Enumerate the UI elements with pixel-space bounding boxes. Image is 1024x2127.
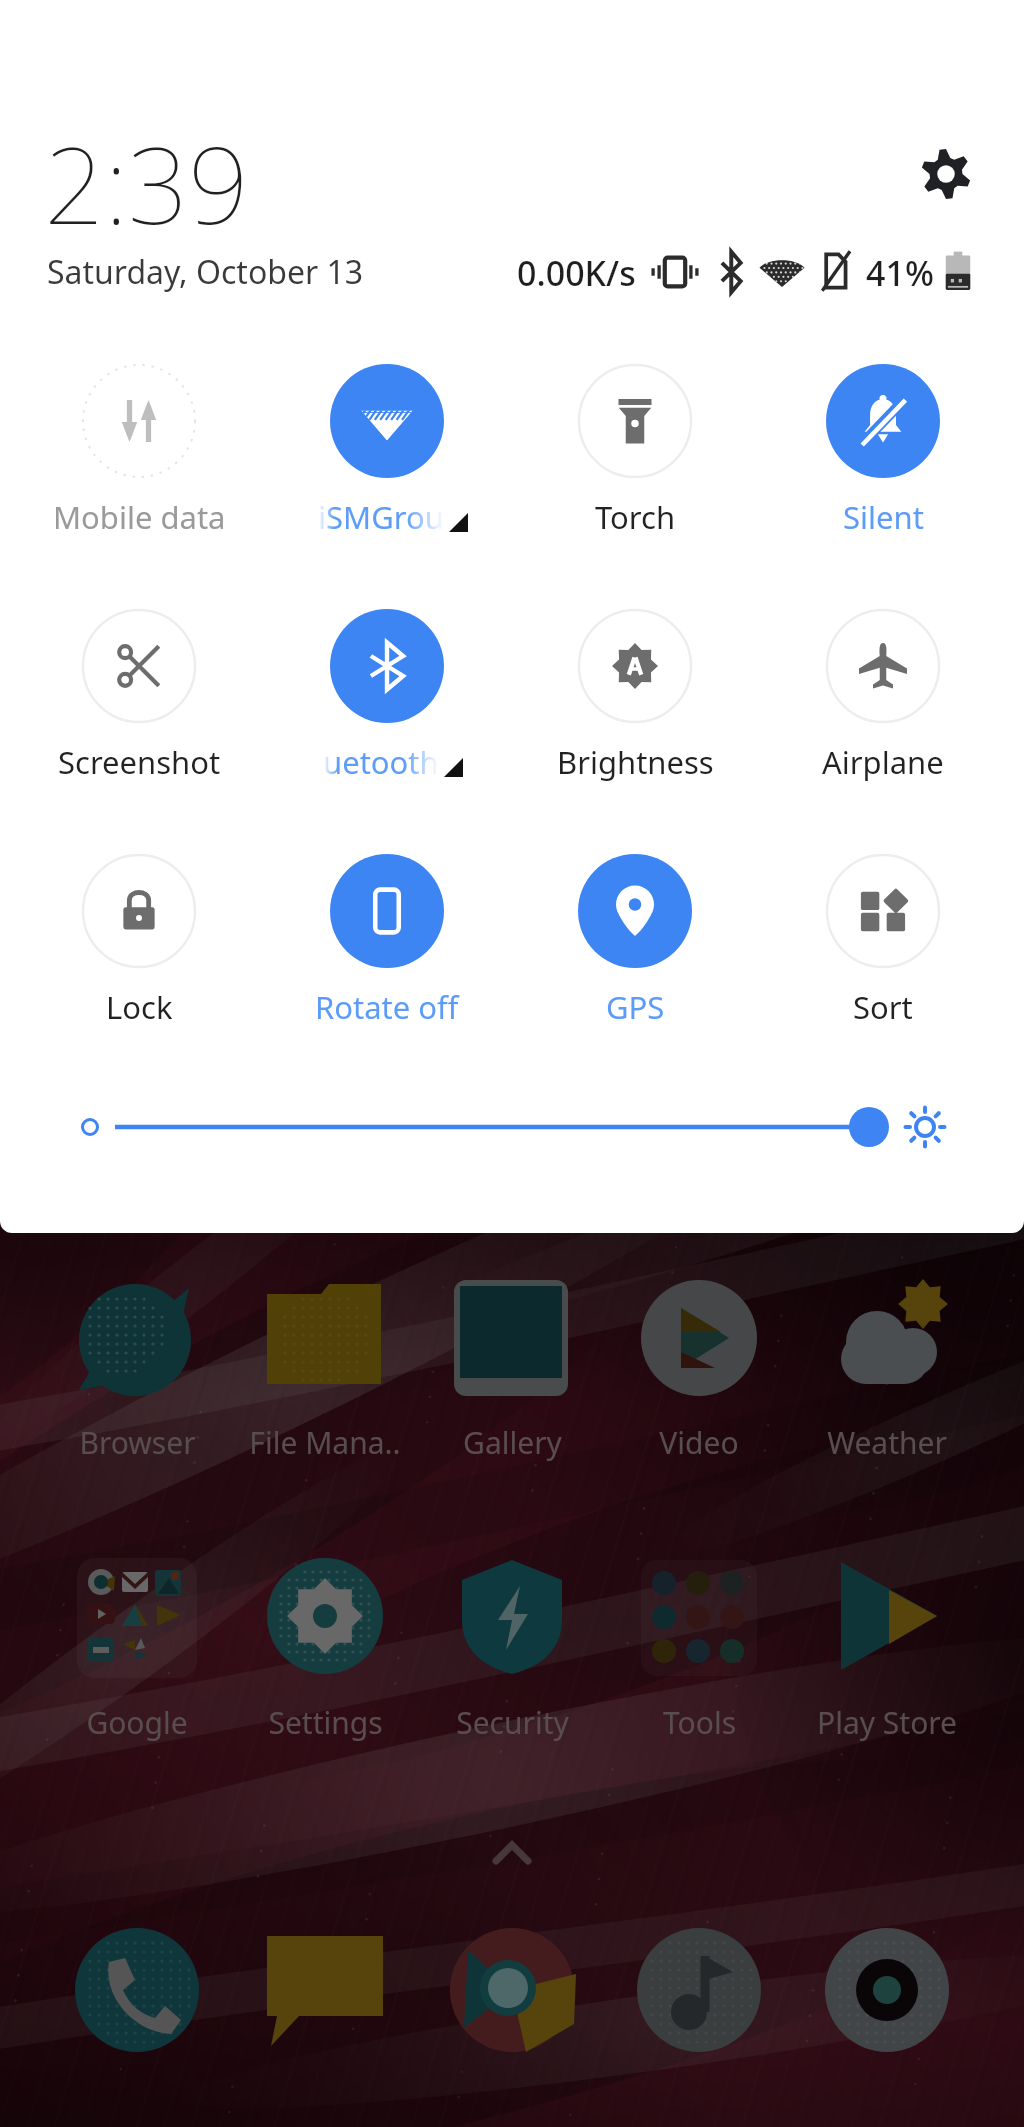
staticText: Sort bbox=[853, 986, 913, 1028]
staticText: Mobile data bbox=[53, 496, 226, 538]
staticText: GPS bbox=[606, 986, 665, 1028]
button[interactable]: Google bbox=[45, 1548, 229, 1743]
button[interactable]: Silent bbox=[771, 351, 995, 541]
staticText: Airplane bbox=[822, 741, 944, 783]
staticText: File Mana.. bbox=[249, 1422, 401, 1463]
button[interactable]: Phone bbox=[71, 1924, 203, 2056]
staticText: Settings bbox=[268, 1702, 383, 1743]
staticText: Gallery bbox=[463, 1422, 562, 1463]
staticText: Tools bbox=[663, 1702, 736, 1743]
button[interactable]: Screenshot bbox=[27, 596, 251, 786]
staticText: Torch bbox=[595, 496, 676, 538]
button[interactable]: Music bbox=[633, 1924, 765, 2056]
button[interactable]: Lock bbox=[27, 841, 251, 1031]
button[interactable]: Gallery bbox=[420, 1270, 604, 1463]
button[interactable]: Settings bbox=[233, 1548, 417, 1743]
button[interactable]: File Mana.. bbox=[233, 1270, 417, 1463]
button[interactable]: Tools bbox=[607, 1548, 791, 1743]
button[interactable]: Weather bbox=[795, 1270, 979, 1463]
staticText: 41% bbox=[866, 250, 934, 296]
button[interactable]: Airplane bbox=[771, 596, 995, 786]
button[interactable]: Torch bbox=[523, 351, 747, 541]
button[interactable]: GPS bbox=[523, 841, 747, 1031]
button[interactable]: Browser bbox=[45, 1270, 229, 1463]
staticText: Browser bbox=[79, 1422, 196, 1463]
button[interactable]: Messages bbox=[259, 1924, 391, 2056]
button[interactable]: Rotate off bbox=[275, 841, 499, 1031]
button[interactable]: Mobile data bbox=[27, 351, 251, 541]
button[interactable]: Brightness bbox=[523, 596, 747, 786]
staticText: Play Store bbox=[817, 1702, 957, 1743]
button[interactable]: Settings bbox=[911, 139, 981, 209]
staticText: Lock bbox=[106, 986, 173, 1028]
staticText: Saturday, October 13 bbox=[47, 250, 364, 294]
button[interactable]: iSMGrou bbox=[275, 351, 499, 541]
staticText: iSMGrou bbox=[318, 496, 444, 538]
button[interactable]: Security bbox=[420, 1548, 604, 1743]
staticText: Silent bbox=[843, 496, 924, 538]
staticText: 2:39 bbox=[44, 111, 249, 255]
staticText: Brightness bbox=[557, 741, 714, 783]
staticText: Screenshot bbox=[58, 741, 221, 783]
staticText: Security bbox=[456, 1702, 569, 1743]
button[interactable]: Video bbox=[607, 1270, 791, 1463]
button[interactable]: Open app drawer bbox=[472, 1821, 552, 1885]
staticText: Video bbox=[659, 1422, 739, 1463]
staticText: Google bbox=[86, 1702, 188, 1743]
button[interactable]: Chrome bbox=[446, 1924, 578, 2056]
button[interactable]: Play Store bbox=[795, 1548, 979, 1743]
staticText: Weather bbox=[827, 1422, 947, 1463]
button[interactable]: uetooth bbox=[275, 596, 499, 786]
button[interactable]: Sort bbox=[771, 841, 995, 1031]
staticText: 0.00K/s bbox=[517, 250, 636, 296]
staticText: Rotate off bbox=[315, 986, 459, 1028]
staticText: uetooth bbox=[323, 741, 439, 783]
button[interactable]: Camera bbox=[821, 1924, 953, 2056]
